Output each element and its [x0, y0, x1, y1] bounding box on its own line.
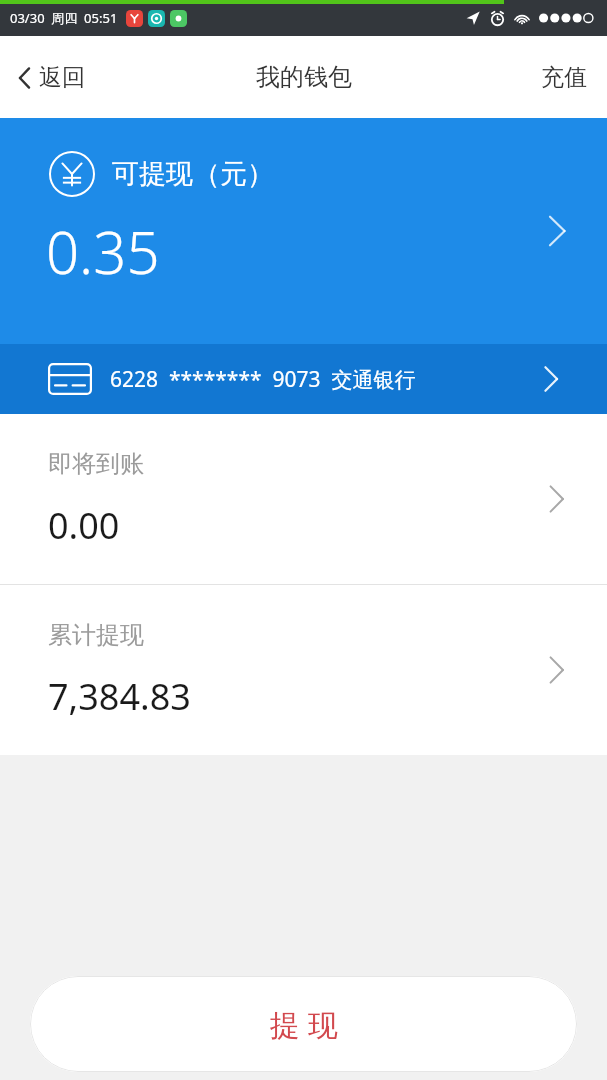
staticText: 提 现: [270, 1004, 338, 1045]
staticText: 充值: [541, 63, 587, 92]
staticText: 7,384.83: [48, 672, 191, 721]
staticText: 累计提现: [48, 620, 144, 650]
staticText: 6228 ******** 9073 交通银行: [110, 365, 416, 394]
button[interactable]: 充值: [521, 47, 607, 108]
button[interactable]: 6228 ******** 9073 交通银行: [0, 344, 607, 414]
staticText: 可提现（元）: [112, 157, 274, 191]
staticText: 03/30 周四 05:51: [10, 9, 118, 27]
staticText: 0.35: [46, 212, 160, 291]
button[interactable]: 累计提现: [0, 585, 607, 755]
button[interactable]: 可提现（元）: [0, 118, 607, 344]
button[interactable]: 提 现: [30, 976, 577, 1072]
button[interactable]: 即将到账: [0, 414, 607, 584]
staticText: 即将到账: [48, 449, 144, 479]
button[interactable]: 返回: [0, 49, 103, 106]
staticText: 我的钱包: [256, 62, 352, 92]
staticText: 返回: [39, 63, 85, 92]
staticText: 0.00: [48, 501, 120, 550]
